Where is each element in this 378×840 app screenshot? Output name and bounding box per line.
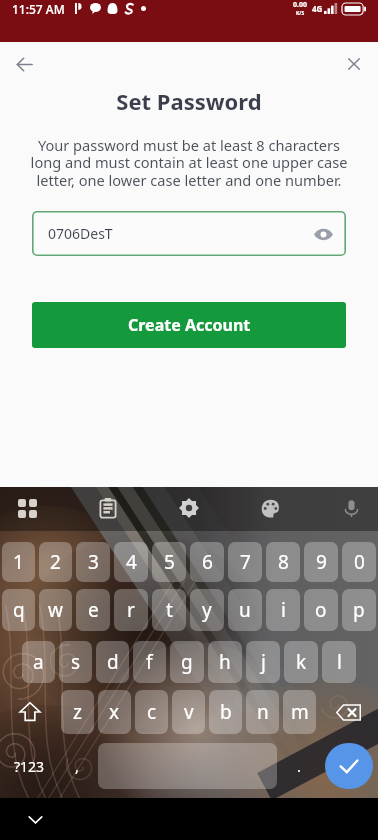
button[interactable]: 7: [228, 542, 262, 582]
staticText: d: [107, 649, 119, 675]
staticText: 0706DesT: [48, 224, 113, 243]
staticText: 0.00: [293, 0, 307, 10]
button[interactable]: a: [22, 641, 55, 683]
button[interactable]: Shift: [2, 690, 57, 734]
staticText: 1: [13, 549, 24, 575]
button[interactable]: k: [284, 641, 318, 683]
staticText: c: [147, 699, 157, 725]
button[interactable]: 0706DesT: [32, 211, 346, 256]
staticText: b: [220, 699, 232, 725]
button[interactable]: ?123: [0, 743, 58, 789]
staticText: q: [13, 597, 25, 623]
button[interactable]: Space: [98, 743, 277, 789]
button[interactable]: m: [283, 690, 316, 734]
button[interactable]: q: [2, 589, 35, 631]
button[interactable]: 6: [190, 542, 224, 582]
button[interactable]: b: [209, 690, 242, 734]
button[interactable]: Toggle password visibility: [308, 219, 338, 249]
button[interactable]: h: [208, 641, 242, 683]
button[interactable]: 0: [342, 542, 376, 582]
staticText: s: [71, 649, 81, 675]
button[interactable]: t: [152, 589, 186, 631]
button[interactable]: Enter: [325, 743, 373, 789]
button[interactable]: Create Account: [32, 302, 346, 348]
staticText: x: [109, 699, 120, 725]
button[interactable]: v: [172, 690, 205, 734]
staticText: u: [239, 597, 251, 623]
button[interactable]: r: [114, 589, 148, 631]
button[interactable]: Voice input: [330, 487, 372, 529]
staticText: i: [281, 597, 286, 623]
button[interactable]: Settings: [168, 487, 210, 529]
button[interactable]: Clipboard: [87, 487, 129, 529]
staticText: z: [73, 699, 82, 725]
staticText: 6: [202, 549, 213, 575]
staticText: ,: [75, 756, 80, 776]
staticText: o: [315, 597, 327, 623]
staticText: Your password must be at least 8 charact…: [10, 135, 368, 190]
staticText: 5: [164, 549, 175, 575]
button[interactable]: ,: [58, 743, 96, 789]
button[interactable]: i: [266, 589, 300, 631]
staticText: .: [297, 756, 302, 776]
button[interactable]: Theme: [249, 487, 291, 529]
button[interactable]: 8: [266, 542, 300, 582]
staticText: n: [257, 699, 269, 725]
button[interactable]: 5: [152, 542, 186, 582]
staticText: l: [337, 649, 342, 675]
staticText: 4G: [312, 3, 323, 14]
staticText: m: [291, 699, 309, 725]
staticText: 8: [278, 549, 289, 575]
button[interactable]: c: [135, 690, 168, 734]
staticText: 3: [88, 549, 99, 575]
staticText: j: [261, 649, 266, 675]
staticText: 9: [316, 549, 327, 575]
staticText: f: [146, 649, 153, 675]
staticText: 11:57 AM: [12, 1, 65, 17]
button[interactable]: Apps: [6, 487, 48, 529]
staticText: 0: [354, 549, 365, 575]
button[interactable]: 3: [76, 542, 110, 582]
button[interactable]: 2: [39, 542, 72, 582]
button[interactable]: l: [322, 641, 356, 683]
button[interactable]: .: [279, 743, 320, 789]
button[interactable]: p: [342, 589, 376, 631]
button[interactable]: z: [61, 690, 94, 734]
button[interactable]: 9: [304, 542, 338, 582]
staticText: k: [296, 649, 307, 675]
button[interactable]: Back: [5, 45, 43, 83]
staticText: a: [33, 649, 44, 675]
staticText: r: [127, 597, 135, 623]
staticText: 7: [240, 549, 251, 575]
staticText: 4: [126, 549, 137, 575]
staticText: w: [48, 597, 63, 623]
staticText: e: [88, 597, 99, 623]
button[interactable]: 4: [114, 542, 148, 582]
button[interactable]: n: [246, 690, 279, 734]
button[interactable]: s: [59, 641, 92, 683]
staticText: g: [181, 649, 193, 675]
button[interactable]: Close: [335, 45, 373, 83]
staticText: v: [184, 699, 194, 725]
button[interactable]: y: [190, 589, 224, 631]
button[interactable]: w: [39, 589, 72, 631]
button[interactable]: f: [133, 641, 166, 683]
button[interactable]: u: [228, 589, 262, 631]
staticText: Create Account: [128, 314, 251, 336]
staticText: K/S: [296, 10, 305, 17]
staticText: ?123: [14, 757, 45, 776]
staticText: h: [219, 649, 231, 675]
button[interactable]: x: [98, 690, 131, 734]
button[interactable]: e: [76, 589, 110, 631]
staticText: t: [166, 597, 173, 623]
button[interactable]: 1: [2, 542, 35, 582]
button[interactable]: j: [246, 641, 280, 683]
button[interactable]: Hide keyboard: [18, 802, 52, 836]
button[interactable]: g: [170, 641, 204, 683]
staticText: 2: [50, 549, 61, 575]
button[interactable]: d: [96, 641, 129, 683]
button[interactable]: o: [304, 589, 338, 631]
staticText: Set Password: [116, 86, 262, 110]
staticText: y: [202, 597, 212, 623]
button[interactable]: Backspace: [320, 690, 376, 734]
